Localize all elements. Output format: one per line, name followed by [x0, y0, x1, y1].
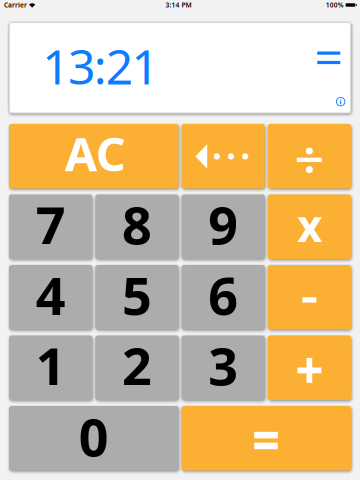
button[interactable]: Plus [268, 335, 351, 400]
staticText: 4 [36, 260, 66, 329]
button[interactable]: 4 [9, 265, 92, 329]
button[interactable]: 7 [9, 194, 92, 259]
button[interactable]: 2 [95, 335, 178, 400]
button[interactable]: 3 [181, 335, 265, 400]
staticText: 6 [208, 260, 238, 329]
staticText: 13:21 [42, 34, 158, 98]
staticText: 8 [122, 190, 152, 259]
button[interactable]: x [268, 194, 351, 259]
button[interactable]: 5 [95, 265, 178, 329]
button[interactable]: 6 [181, 265, 265, 329]
button[interactable]: 1 [9, 335, 92, 400]
staticText: 1 [36, 331, 66, 400]
button[interactable]: Divide [268, 124, 351, 188]
button[interactable]: Backspace [181, 124, 265, 188]
button[interactable]: 9 [181, 194, 265, 259]
button[interactable]: AC [9, 124, 178, 188]
button[interactable]: Equals [181, 406, 351, 470]
button[interactable]: 0 [9, 406, 178, 470]
staticText: 5 [122, 260, 152, 329]
button[interactable]: Minus [268, 265, 351, 329]
staticText: 3:14 PM [165, 1, 191, 9]
staticText: 2 [122, 331, 152, 400]
staticText: 0 [79, 402, 109, 471]
staticText: 3 [208, 331, 238, 400]
staticText: Carrier [4, 1, 27, 9]
staticText: 9 [208, 190, 238, 259]
button[interactable]: 8 [95, 194, 178, 259]
staticText: x [297, 196, 322, 254]
button[interactable]: Info [335, 96, 346, 107]
staticText: AC [65, 122, 126, 184]
staticText: 7 [36, 190, 66, 259]
staticText: 100% [326, 1, 344, 9]
